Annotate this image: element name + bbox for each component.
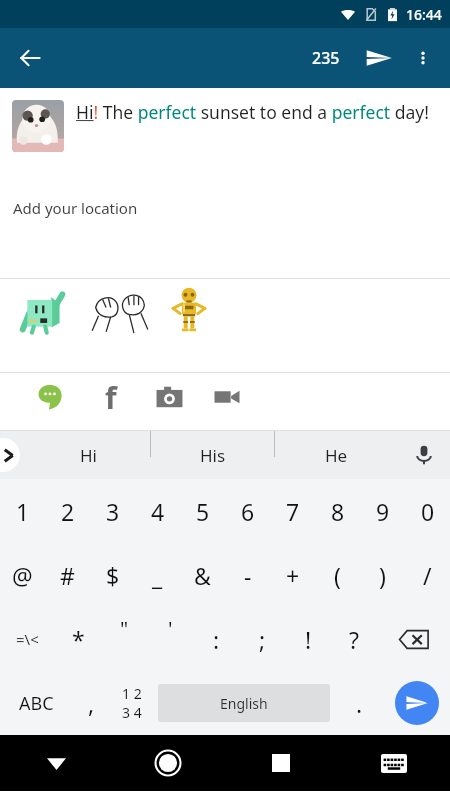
button[interactable]: ABC — [0, 671, 72, 735]
button[interactable]: Send — [356, 35, 402, 81]
button[interactable]: ) — [360, 543, 405, 607]
button[interactable]: ? — [331, 607, 377, 671]
button[interactable]: Expand suggestions — [0, 438, 20, 472]
staticText: & — [194, 560, 211, 591]
button[interactable]: * — [55, 607, 101, 671]
button[interactable] — [88, 279, 152, 343]
button[interactable]: 0 — [405, 479, 450, 543]
button[interactable]: Home — [112, 735, 224, 791]
button[interactable]: 2 — [45, 479, 90, 543]
button[interactable] — [160, 282, 218, 340]
button[interactable]: " — [101, 607, 147, 671]
staticText: 5 — [196, 496, 210, 527]
staticText: . — [356, 688, 363, 719]
button[interactable]: Camera — [145, 373, 193, 421]
staticText: 16:44 — [406, 5, 442, 24]
button[interactable]: Hide keyboard — [0, 735, 112, 791]
staticText: 2 — [61, 496, 75, 527]
button[interactable]: 1 — [0, 479, 45, 543]
button[interactable]: # — [45, 543, 90, 607]
staticText: Hi — [80, 444, 97, 467]
staticText: 6 — [241, 496, 255, 527]
staticText: 3 4 — [122, 703, 142, 722]
button[interactable]: : — [193, 607, 239, 671]
staticText: 235 — [312, 47, 340, 69]
staticText: 3 — [106, 496, 120, 527]
button[interactable]: - — [225, 543, 270, 607]
button[interactable]: Send message — [395, 681, 439, 725]
staticText: 9 — [376, 496, 390, 527]
staticText: ' — [168, 615, 173, 642]
staticText: 1 — [16, 496, 30, 527]
button[interactable]: ( — [315, 543, 360, 607]
staticText: / — [423, 560, 432, 591]
staticText: - — [244, 560, 252, 591]
button[interactable]: & — [180, 543, 225, 607]
button[interactable]: 6 — [225, 479, 270, 543]
button[interactable]: Hi — [26, 431, 150, 479]
staticText: Add your location — [13, 198, 138, 218]
button[interactable]: Add your location — [0, 188, 450, 228]
staticText: _ — [152, 560, 163, 591]
staticText: =\< — [16, 629, 39, 649]
button[interactable]: ; — [239, 607, 285, 671]
button[interactable]: ' — [147, 607, 193, 671]
staticText: * — [72, 624, 85, 655]
staticText: Hi! The perfect sunset to end a perfect … — [76, 100, 429, 124]
staticText: f — [105, 377, 117, 418]
button[interactable]: =\< — [0, 607, 55, 671]
staticText: 4 — [151, 496, 165, 527]
button[interactable]: 9 — [360, 479, 405, 543]
staticText: He — [325, 444, 348, 467]
staticText: # — [60, 560, 75, 591]
button[interactable]: He — [275, 431, 398, 479]
button[interactable]: + — [270, 543, 315, 607]
staticText: ; — [259, 624, 266, 655]
staticText: 8 — [331, 496, 345, 527]
staticText: $ — [106, 560, 120, 591]
staticText: His — [200, 444, 226, 467]
button[interactable]: Backspace — [377, 607, 450, 671]
button[interactable]: Switch keyboard — [337, 735, 450, 791]
button[interactable]: His — [151, 431, 274, 479]
button[interactable]: , — [72, 671, 110, 735]
button[interactable]: Recent apps — [224, 735, 337, 791]
button[interactable]: Hangouts — [26, 373, 74, 421]
button[interactable]: More options — [402, 37, 444, 79]
staticText: ( — [334, 560, 341, 591]
button[interactable]: 4 — [135, 479, 180, 543]
button[interactable]: @ — [0, 543, 45, 607]
staticText: 1 2 — [122, 684, 142, 703]
staticText: @ — [12, 560, 33, 591]
staticText: 7 — [286, 496, 300, 527]
button[interactable]: . — [335, 671, 383, 735]
staticText: + — [286, 560, 300, 591]
staticText: " — [120, 615, 129, 642]
staticText: , — [88, 688, 95, 719]
button[interactable]: _ — [135, 543, 180, 607]
button[interactable] — [12, 100, 64, 152]
button[interactable]: English — [158, 684, 330, 722]
staticText: 0 — [421, 496, 435, 527]
button[interactable]: $ — [90, 543, 135, 607]
button[interactable]: Video — [203, 373, 251, 421]
button[interactable]: 8 — [315, 479, 360, 543]
button[interactable]: 3 — [90, 479, 135, 543]
button[interactable]: / — [405, 543, 450, 607]
staticText: ! — [305, 624, 312, 655]
staticText: : — [213, 624, 220, 655]
button[interactable]: Facebook — [87, 373, 135, 421]
button[interactable]: Voice input — [398, 431, 450, 479]
staticText: ? — [349, 624, 359, 655]
staticText: English — [220, 694, 268, 713]
button[interactable]: Numbers — [110, 671, 153, 735]
button[interactable]: Back — [8, 36, 52, 80]
button[interactable]: 7 — [270, 479, 315, 543]
button[interactable]: ! — [285, 607, 331, 671]
button[interactable] — [14, 282, 72, 340]
button[interactable]: 5 — [180, 479, 225, 543]
staticText: ABC — [19, 691, 54, 716]
staticText: ) — [379, 560, 386, 591]
